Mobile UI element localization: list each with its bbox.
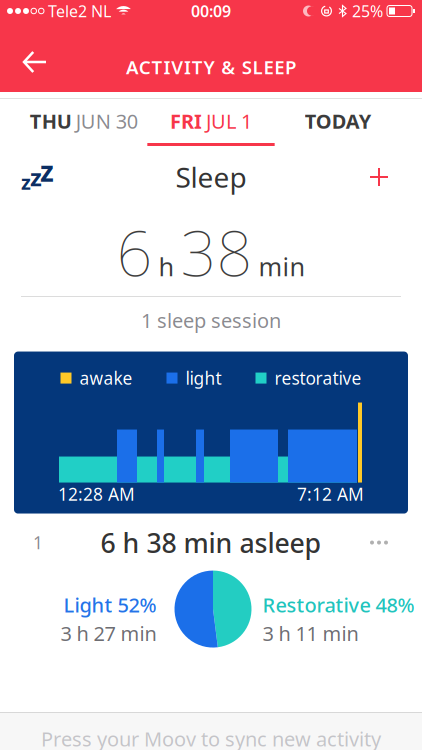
staticText: awake [79, 367, 132, 390]
button[interactable]: More options [370, 541, 422, 545]
staticText: z [21, 169, 31, 195]
staticText: 25% [352, 0, 383, 22]
button[interactable]: TODAY [275, 99, 402, 146]
staticText: TODAY [305, 108, 372, 134]
staticText: Press your Moov to sync new activity [41, 725, 381, 750]
staticText: 1 [33, 531, 43, 554]
staticText: min [258, 250, 305, 283]
button[interactable]: THU [20, 99, 147, 146]
staticText: 12:28 AM [58, 482, 135, 505]
staticText: Tele2 NL [48, 0, 111, 22]
staticText: z [30, 161, 42, 193]
staticText: 3 h 11 min [262, 620, 358, 647]
staticText: Restorative 48% [262, 591, 414, 618]
staticText: THU [30, 108, 72, 134]
staticText: ACTIVITY & SLEEP [126, 55, 296, 79]
button[interactable]: Back [0, 37, 46, 77]
staticText: JUL 1 [206, 108, 252, 134]
staticText: 00:09 [191, 0, 231, 22]
button[interactable]: FRI [147, 99, 275, 146]
staticText: Sleep [175, 158, 246, 196]
staticText: 6 h 38 min asleep [100, 525, 321, 560]
staticText: z [40, 152, 54, 190]
staticText: light [185, 367, 221, 390]
button[interactable]: Add sleep [370, 168, 422, 186]
staticText: 3 h 27 min [60, 620, 156, 647]
staticText: restorative [274, 367, 361, 390]
staticText: 7:12 AM [297, 482, 364, 505]
staticText: JUN 30 [76, 108, 138, 134]
staticText: FRI [170, 108, 202, 134]
staticText: 6 [116, 210, 152, 294]
staticText: h [158, 250, 174, 283]
staticText: 1 sleep session [141, 307, 281, 334]
staticText: Light 52% [63, 591, 156, 618]
staticText: 38 [180, 210, 252, 294]
